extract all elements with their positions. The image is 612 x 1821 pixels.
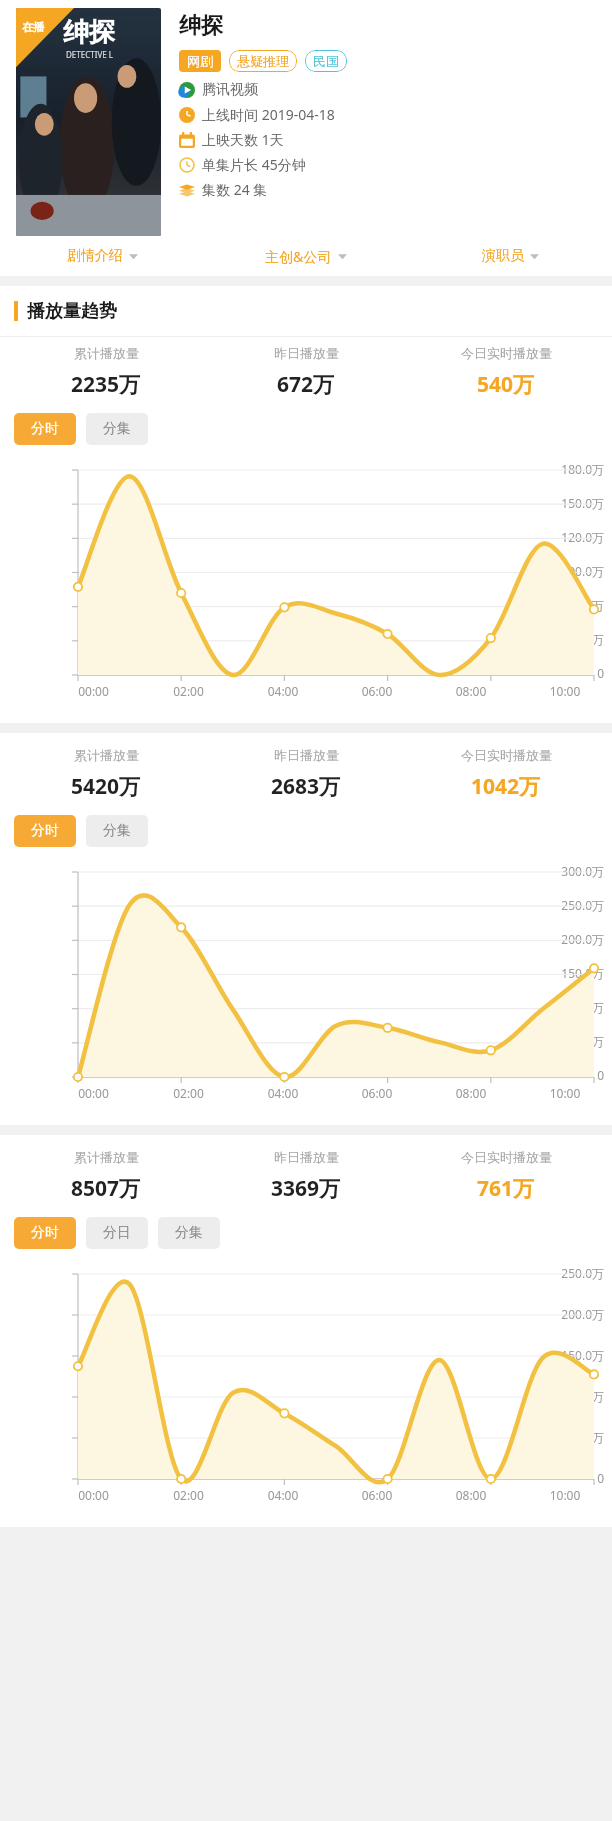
staticText: 分日: [103, 1224, 131, 1242]
staticText: 04:00: [236, 1487, 330, 1503]
staticText: 今日实时播放量: [461, 345, 552, 361]
staticText: 昨日播放量: [274, 345, 339, 361]
button[interactable]: 主创&公司: [204, 247, 408, 266]
staticText: 腾讯视频: [202, 81, 258, 99]
staticText: 民国: [313, 53, 339, 69]
button[interactable]: 分时: [14, 815, 76, 847]
staticText: 120.0万: [540, 529, 604, 545]
button[interactable]: 网剧: [179, 50, 221, 72]
staticText: 50.0万: [540, 1429, 604, 1445]
staticText: 1042万: [471, 772, 541, 801]
staticText: 00:00: [46, 683, 141, 699]
staticText: 0: [540, 665, 604, 681]
staticText: 分时: [31, 420, 59, 438]
staticText: 90.0万: [540, 563, 604, 579]
staticText: 播放量趋势: [27, 300, 117, 323]
staticText: 02:00: [141, 1487, 236, 1503]
staticText: 分时: [31, 822, 59, 840]
staticText: 04:00: [236, 683, 330, 699]
staticText: 06:00: [330, 683, 424, 699]
staticText: 0: [540, 1470, 604, 1486]
staticText: 累计播放量: [74, 345, 139, 361]
staticText: 200.0万: [540, 1306, 604, 1322]
staticText: 540万: [477, 370, 535, 399]
staticText: 672万: [277, 370, 335, 399]
button[interactable]: 分时: [14, 1217, 76, 1249]
staticText: 昨日播放量: [274, 747, 339, 763]
staticText: 250.0万: [540, 897, 604, 913]
staticText: 08:00: [424, 1085, 518, 1101]
button[interactable]: 民国: [305, 50, 347, 72]
staticText: 2235万: [71, 370, 141, 399]
staticText: 180.0万: [540, 461, 604, 477]
button[interactable]: 分集: [86, 815, 148, 847]
staticText: 04:00: [236, 1085, 330, 1101]
staticText: 02:00: [141, 1085, 236, 1101]
staticText: 0: [540, 1067, 604, 1083]
staticText: 00:00: [46, 1085, 141, 1101]
staticText: 00:00: [46, 1487, 141, 1503]
staticText: 3369万: [271, 1174, 341, 1203]
staticText: 30.0万: [540, 631, 604, 647]
staticText: 250.0万: [540, 1265, 604, 1281]
staticText: 100.0万: [540, 999, 604, 1015]
staticText: 网剧: [187, 53, 213, 69]
staticText: 集数 24 集: [202, 180, 268, 199]
staticText: 200.0万: [540, 931, 604, 947]
staticText: 在播: [22, 20, 44, 34]
staticText: 100.0万: [540, 1388, 604, 1404]
staticText: 单集片长 45分钟: [202, 155, 306, 174]
staticText: 累计播放量: [74, 747, 139, 763]
staticText: 300.0万: [540, 863, 604, 879]
staticText: 累计播放量: [74, 1149, 139, 1165]
staticText: 悬疑推理: [237, 53, 289, 69]
staticText: 2683万: [271, 772, 341, 801]
staticText: 演职员: [482, 247, 524, 265]
staticText: 150.0万: [540, 1347, 604, 1363]
staticText: 5420万: [71, 772, 141, 801]
staticText: 150.0万: [540, 965, 604, 981]
staticText: 50.0万: [540, 1033, 604, 1049]
staticText: 上线时间 2019-04-18: [202, 105, 335, 124]
staticText: 分集: [175, 1224, 203, 1242]
button[interactable]: 演职员: [408, 247, 612, 265]
button[interactable]: 分时: [14, 413, 76, 445]
staticText: 60.0万: [540, 597, 604, 613]
button[interactable]: 分日: [86, 1217, 148, 1249]
staticText: 08:00: [424, 1487, 518, 1503]
staticText: 昨日播放量: [274, 1149, 339, 1165]
staticText: 10:00: [518, 683, 612, 699]
button[interactable]: 悬疑推理: [229, 50, 297, 72]
staticText: 分时: [31, 1224, 59, 1242]
staticText: 今日实时播放量: [461, 1149, 552, 1165]
button[interactable]: 绅探 poster: [16, 8, 161, 236]
staticText: 绅探: [179, 12, 223, 40]
button[interactable]: 分集: [86, 413, 148, 445]
staticText: 761万: [477, 1174, 535, 1203]
staticText: DETECTIVE L: [66, 49, 113, 60]
staticText: 8507万: [71, 1174, 141, 1203]
staticText: 08:00: [424, 683, 518, 699]
staticText: 02:00: [141, 683, 236, 699]
staticText: 分集: [103, 822, 131, 840]
staticText: 10:00: [518, 1487, 612, 1503]
staticText: 剧情介绍: [67, 247, 123, 265]
staticText: 绅探: [63, 16, 115, 49]
staticText: 06:00: [330, 1085, 424, 1101]
staticText: 06:00: [330, 1487, 424, 1503]
staticText: 150.0万: [540, 495, 604, 511]
button[interactable]: 剧情介绍: [0, 247, 204, 265]
staticText: 上映天数 1天: [202, 130, 284, 149]
staticText: 10:00: [518, 1085, 612, 1101]
staticText: 今日实时播放量: [461, 747, 552, 763]
staticText: 主创&公司: [265, 247, 332, 266]
staticText: 分集: [103, 420, 131, 438]
button[interactable]: 分集: [158, 1217, 220, 1249]
